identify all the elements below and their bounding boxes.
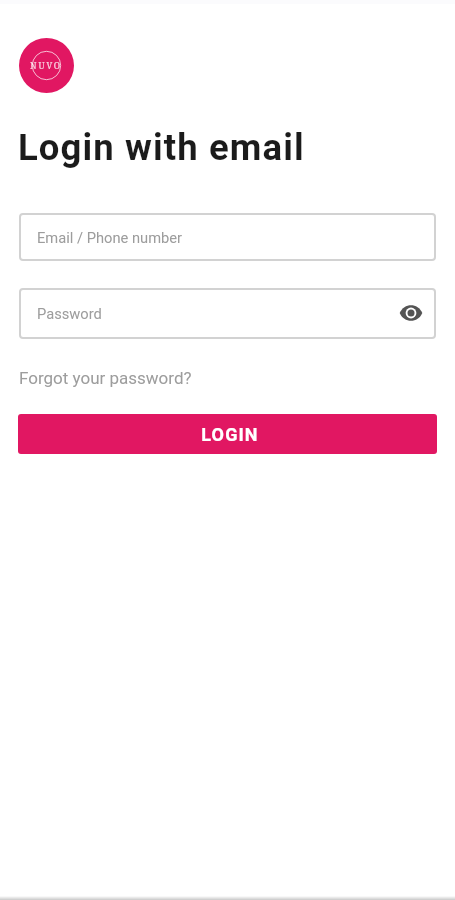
button[interactable]: Email / Phone number	[19, 213, 436, 261]
button[interactable]: Forgot your password?	[19, 368, 192, 388]
button[interactable]: LOGIN	[18, 414, 437, 454]
button[interactable]: Show password	[396, 298, 426, 328]
button[interactable]: Password	[19, 288, 436, 339]
staticText: LOGIN	[201, 424, 259, 445]
staticText: Login with email	[18, 126, 305, 169]
staticText: NUVO	[30, 60, 63, 72]
button[interactable]: Nuvo logo	[19, 38, 74, 93]
staticText: Email / Phone number	[37, 229, 183, 246]
staticText: Password	[37, 305, 102, 322]
